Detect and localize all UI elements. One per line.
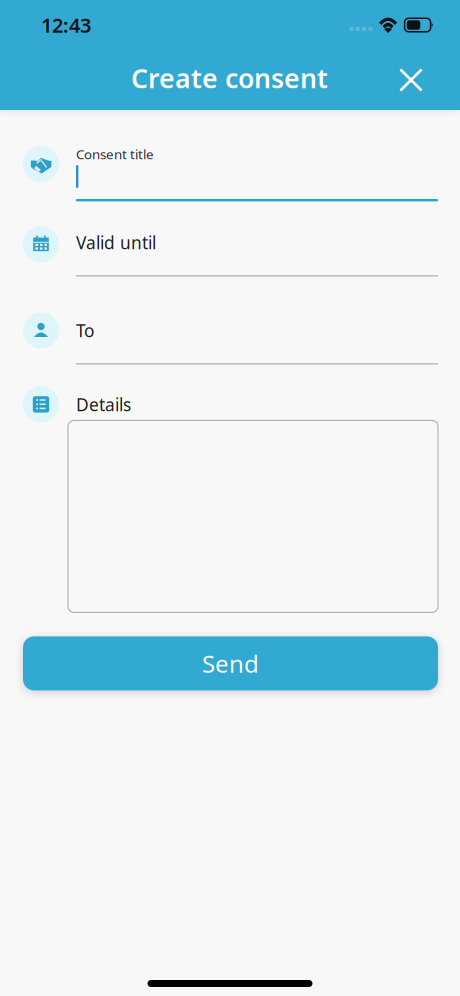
button[interactable]: Consent title — [23, 148, 438, 201]
staticText: Create consent — [131, 60, 328, 96]
staticText: Valid until — [76, 231, 156, 254]
button[interactable]: Send — [23, 636, 438, 690]
staticText: Details — [76, 393, 131, 416]
staticText: To — [76, 319, 94, 342]
button[interactable]: Details — [23, 396, 438, 612]
staticText: 12:43 — [41, 12, 91, 38]
button[interactable]: Valid until — [23, 234, 438, 276]
staticText: Send — [202, 647, 259, 679]
staticText: Consent title — [76, 145, 154, 163]
button[interactable]: To — [23, 322, 438, 364]
button[interactable]: Close — [389, 58, 433, 102]
